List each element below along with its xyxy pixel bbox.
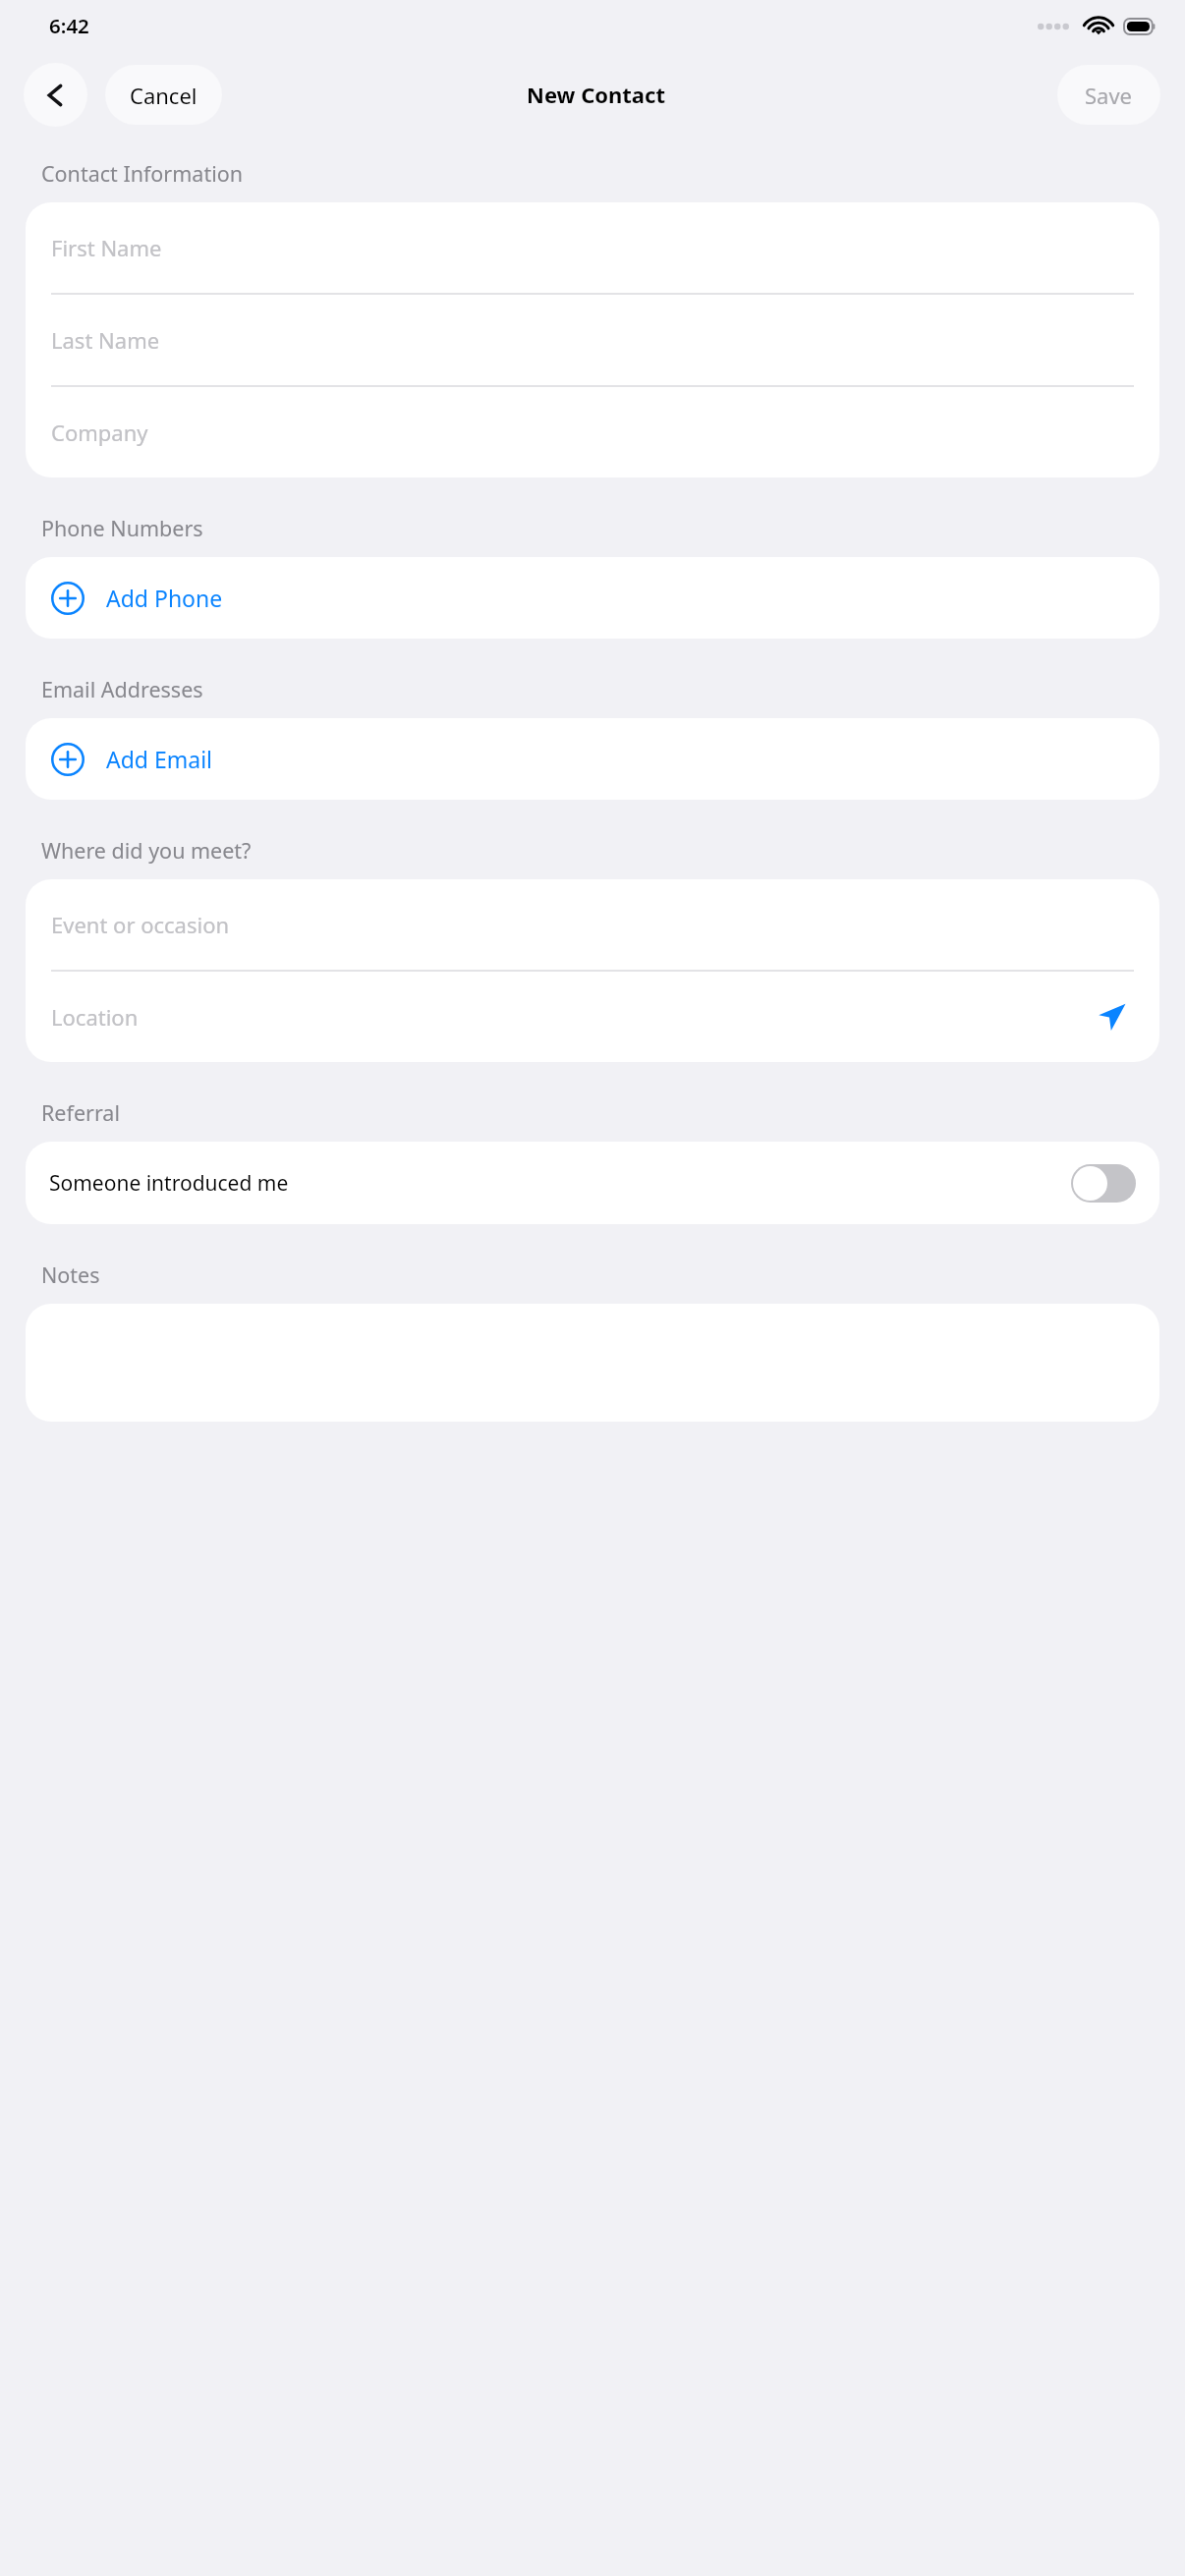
button[interactable]: Last Name bbox=[26, 295, 1159, 385]
staticText: Contact Information bbox=[41, 159, 244, 188]
staticText: Company bbox=[51, 418, 1134, 447]
staticText: Referral bbox=[41, 1098, 120, 1127]
button[interactable]: Use current location bbox=[1091, 995, 1134, 1038]
staticText: Email Addresses bbox=[41, 675, 203, 703]
button[interactable]: Back bbox=[24, 63, 87, 127]
staticText: Location bbox=[51, 1002, 1091, 1032]
staticText: First Name bbox=[51, 233, 1134, 262]
button[interactable]: First Name bbox=[26, 202, 1159, 293]
staticText: Add Phone bbox=[106, 583, 223, 613]
staticText: Phone Numbers bbox=[41, 514, 203, 542]
button[interactable]: Event or occasion bbox=[26, 879, 1159, 970]
button[interactable]: Cancel bbox=[105, 65, 222, 125]
button[interactable]: Company bbox=[26, 387, 1159, 477]
staticText: Where did you meet? bbox=[41, 836, 252, 865]
button[interactable]: Add Phone bbox=[26, 557, 1159, 639]
button[interactable]: Someone introduced me toggle bbox=[1071, 1164, 1136, 1203]
staticText: Someone introduced me bbox=[49, 1169, 1071, 1198]
staticText: Add Email bbox=[106, 744, 213, 774]
staticText: Notes bbox=[41, 1260, 100, 1289]
button[interactable]: Save bbox=[1057, 65, 1160, 125]
staticText: Last Name bbox=[51, 325, 1134, 355]
staticText: 6:42 bbox=[49, 12, 89, 39]
button[interactable]: Add Email bbox=[26, 718, 1159, 800]
button[interactable]: Location bbox=[26, 972, 1159, 1062]
staticText: Cancel bbox=[130, 81, 197, 110]
staticText: New Contact bbox=[527, 80, 665, 109]
staticText: Event or occasion bbox=[51, 910, 1134, 939]
staticText: Save bbox=[1085, 81, 1133, 110]
button[interactable]: Someone introduced me bbox=[26, 1142, 1159, 1224]
